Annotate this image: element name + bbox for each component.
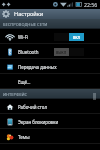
staticText: Ещё... (18, 79, 31, 85)
button[interactable]: Bluetooth (0, 44, 100, 59)
button[interactable]: Wi-Fi (0, 29, 100, 44)
button[interactable]: Ещё... (0, 74, 100, 89)
staticText: БЕСПРОВОДНЫЕ СЕТИ (3, 22, 48, 27)
button[interactable]: Настройки (0, 9, 100, 19)
staticText: Рабочий стол (18, 104, 48, 110)
button[interactable]: Передача данных (0, 59, 100, 74)
staticText: ВЫКЛ (56, 50, 67, 55)
button[interactable]: Turn off (54, 33, 84, 41)
staticText: Экран блокировки (18, 119, 59, 125)
button[interactable]: Рабочий стол (0, 99, 100, 114)
button[interactable]: Темы (0, 129, 100, 144)
staticText: Темы (18, 134, 30, 140)
button[interactable]: Экран блокировки (0, 114, 100, 129)
staticText: 22:56 (84, 1, 98, 8)
staticText: ИНТЕРФЕЙС (3, 92, 28, 97)
staticText: Bluetooth (18, 49, 39, 55)
staticText: ВКЛ (73, 35, 81, 40)
staticText: Wi-Fi (18, 34, 29, 40)
staticText: Передача данных (18, 64, 57, 70)
button[interactable]: Turn on (54, 48, 84, 56)
staticText: Настройки (14, 10, 44, 18)
